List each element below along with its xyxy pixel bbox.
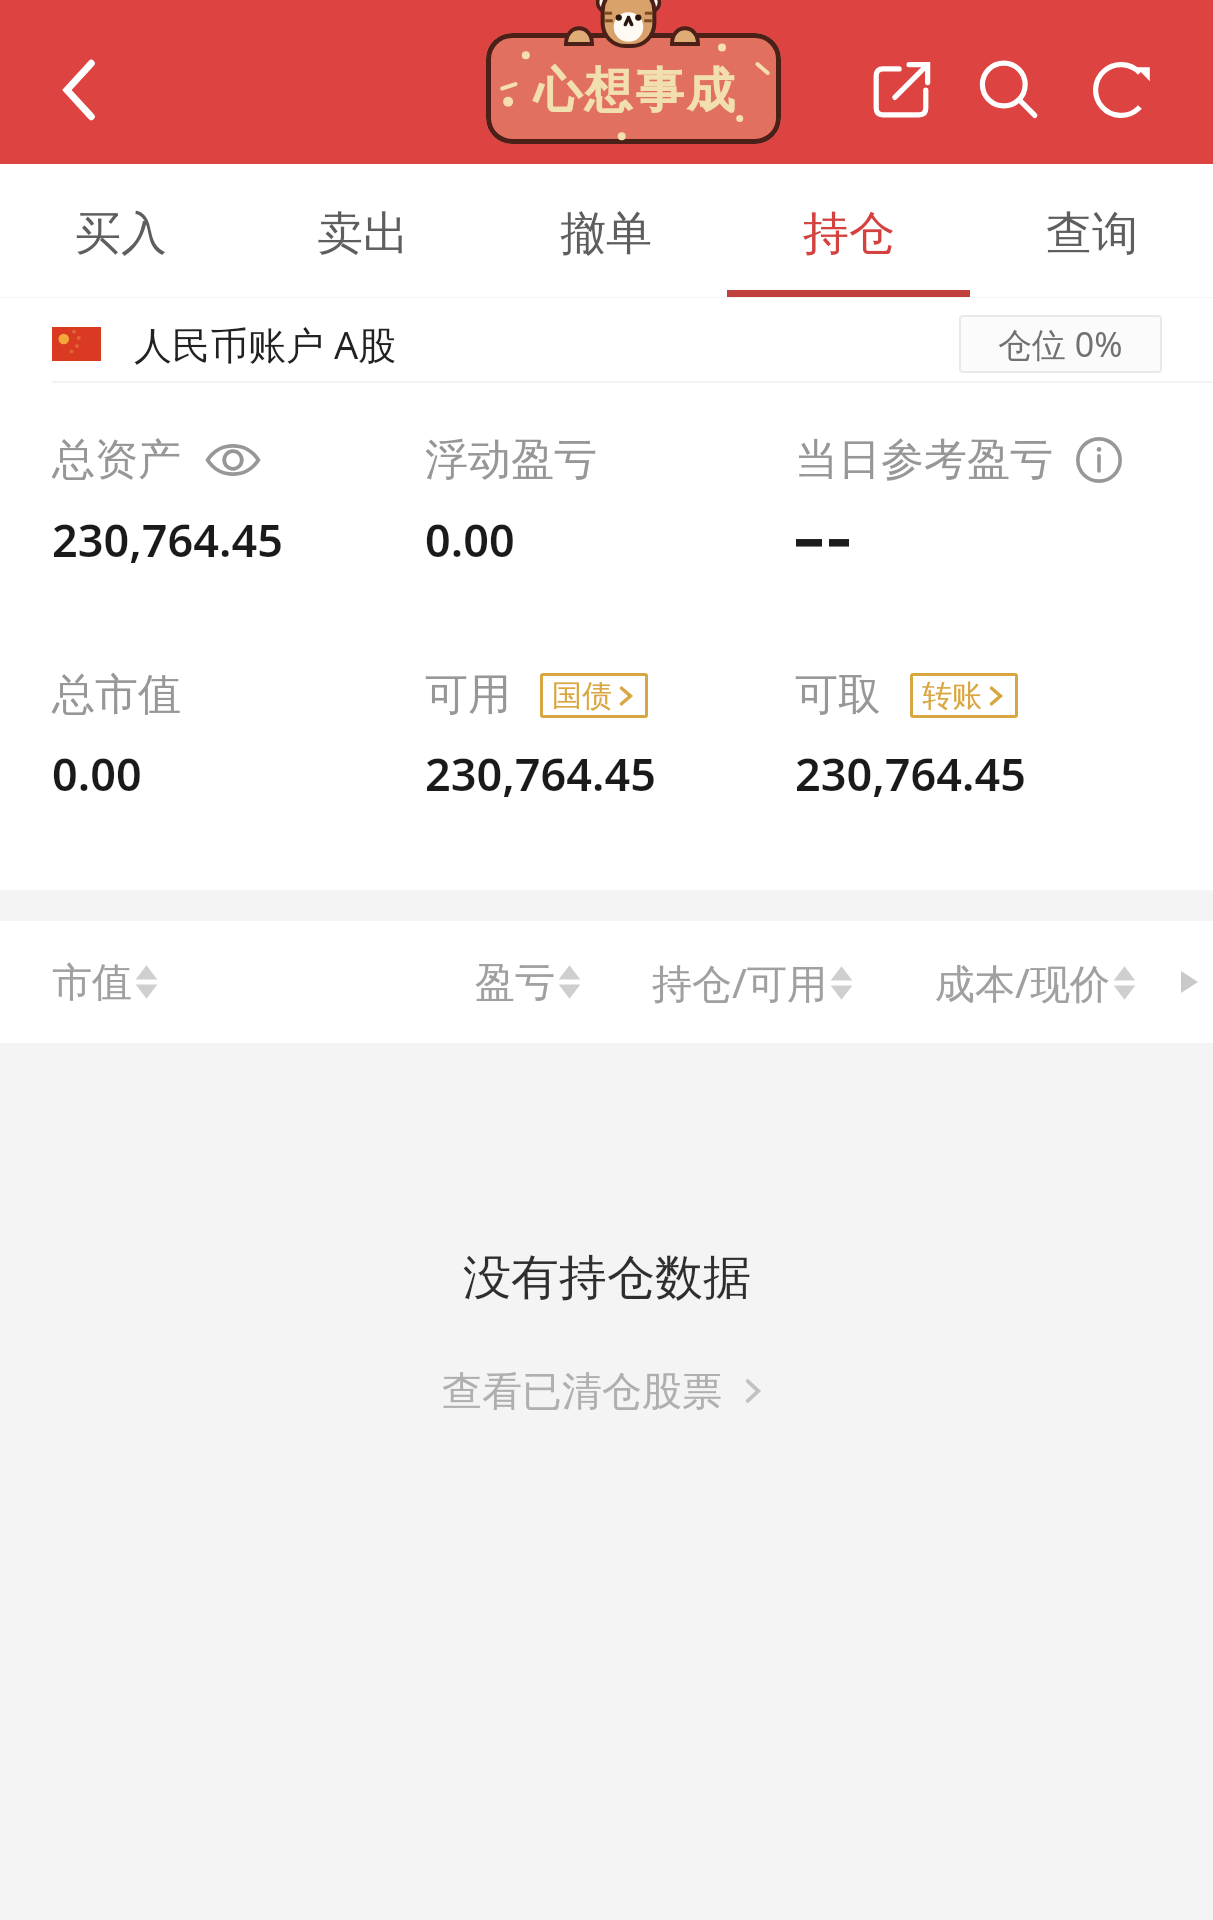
staticText: 230,764.45 [52,509,283,565]
staticText: 可用 [425,668,511,722]
staticText: 0.00 [52,743,142,799]
button[interactable]: More columns [1171,952,1207,1012]
button[interactable]: 盈亏 [475,957,581,1007]
staticText: 0.00 [425,509,515,565]
staticText: 撤单 [560,205,652,263]
staticText: 没有持仓数据 [463,1248,751,1308]
staticText: 市值 [52,957,132,1007]
staticText: 230,764.45 [425,743,656,799]
button[interactable]: Refresh [1067,36,1175,144]
staticText: 总市值 [52,668,181,722]
button[interactable]: 卖出 [242,164,484,298]
button[interactable]: 市值 [52,957,158,1007]
button[interactable]: 买入 [0,164,242,298]
staticText: 买入 [75,205,167,263]
staticText: 查看已清仓股票 [442,1366,722,1416]
staticText: 持仓 [803,205,895,263]
staticText: 盈亏 [475,957,555,1007]
staticText: 心想事成 [532,61,736,121]
staticText: 230,764.45 [795,743,1026,799]
staticText: 国债 [552,677,612,715]
button[interactable]: 查看已清仓股票 [442,1366,772,1416]
button[interactable]: Share [847,36,955,144]
button[interactable]: 人民币账户 A股 [52,306,397,381]
staticText: 浮动盈亏 [425,433,597,487]
staticText: 成本/现价 [935,955,1110,1010]
button[interactable]: 成本/现价 [935,955,1136,1010]
staticText: 可取 [795,668,881,722]
button[interactable]: Information [1076,437,1122,483]
button[interactable]: 转账 [922,673,1010,718]
button[interactable]: Search [956,36,1064,144]
staticText: 持仓/可用 [652,955,827,1010]
button[interactable]: 持仓/可用 [652,955,853,1010]
button[interactable]: 撤单 [484,164,727,298]
staticText: 人民币账户 A股 [134,318,397,370]
button[interactable]: 仓位 0% [959,315,1162,373]
button[interactable]: 国债 [552,673,640,718]
staticText: 总资产 [52,433,181,487]
staticText: 当日参考盈亏 [795,433,1053,487]
staticText: 仓位 0% [998,321,1123,367]
button[interactable]: 查询 [970,164,1213,298]
button[interactable]: 持仓 [727,164,970,298]
button[interactable]: Back [30,38,134,142]
button[interactable]: Toggle balance visibility [206,438,260,482]
staticText: 卖出 [317,205,409,263]
staticText: 转账 [922,677,982,715]
staticText: 查询 [1046,205,1138,263]
